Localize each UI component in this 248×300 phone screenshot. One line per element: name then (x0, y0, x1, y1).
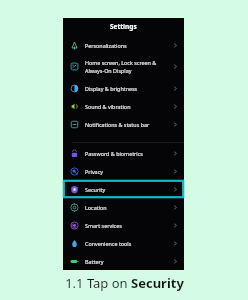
staticText: Personalizations (85, 42, 127, 49)
button[interactable]: Home screen, Lock screen & (63, 54, 184, 79)
button[interactable]: Security (63, 180, 184, 198)
staticText: Battery (85, 258, 104, 265)
staticText: Password & biometrics (85, 150, 143, 157)
button[interactable]: Password & biometrics (63, 144, 184, 162)
button[interactable]: Personalizations (63, 36, 184, 54)
button[interactable]: Sound & vibration (63, 97, 184, 115)
staticText: Settings (110, 22, 137, 31)
staticText: Security (85, 186, 106, 193)
staticText: Convenience tools (85, 240, 132, 247)
staticText: Notifications & status bar (85, 121, 150, 128)
staticText: Sound & vibration (85, 103, 131, 110)
button[interactable]: Notifications & status bar (63, 115, 184, 133)
button[interactable]: Privacy (63, 162, 184, 180)
staticText: 1.1 Tap on Security (65, 274, 184, 292)
staticText: Location (85, 204, 107, 211)
staticText: Privacy (85, 168, 103, 175)
button[interactable]: Convenience tools (63, 234, 184, 252)
button[interactable]: Location (63, 198, 184, 216)
staticText: Home screen, Lock screen & (85, 59, 157, 66)
staticText: Display & brightness (85, 85, 138, 92)
button[interactable]: Display & brightness (63, 79, 184, 97)
button[interactable]: Smart services (63, 216, 184, 234)
button[interactable]: Battery (63, 252, 184, 270)
staticText: Smart services (85, 222, 122, 229)
staticText: Always-On Display (85, 67, 132, 74)
